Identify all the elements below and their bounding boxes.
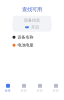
button[interactable]: Tab (0, 84, 16, 92)
staticText: 标签 (53, 89, 59, 92)
staticText: 开启 (31, 25, 39, 30)
staticText: 电池电量 (17, 43, 33, 48)
button[interactable]: Tab (48, 84, 64, 92)
button[interactable]: 电池电量 (12, 43, 51, 48)
button[interactable]: 设备名称 (12, 35, 51, 40)
staticText: 标签 (21, 89, 27, 92)
staticText: 标签 (5, 89, 11, 92)
button[interactable]: Tab (32, 84, 48, 92)
button[interactable]: Tab (16, 84, 32, 92)
staticText: 设备信息 (24, 18, 40, 23)
staticText: 设备名称 (17, 35, 33, 40)
staticText: 查找可用 (22, 6, 42, 13)
staticText: 标签 (37, 89, 43, 92)
